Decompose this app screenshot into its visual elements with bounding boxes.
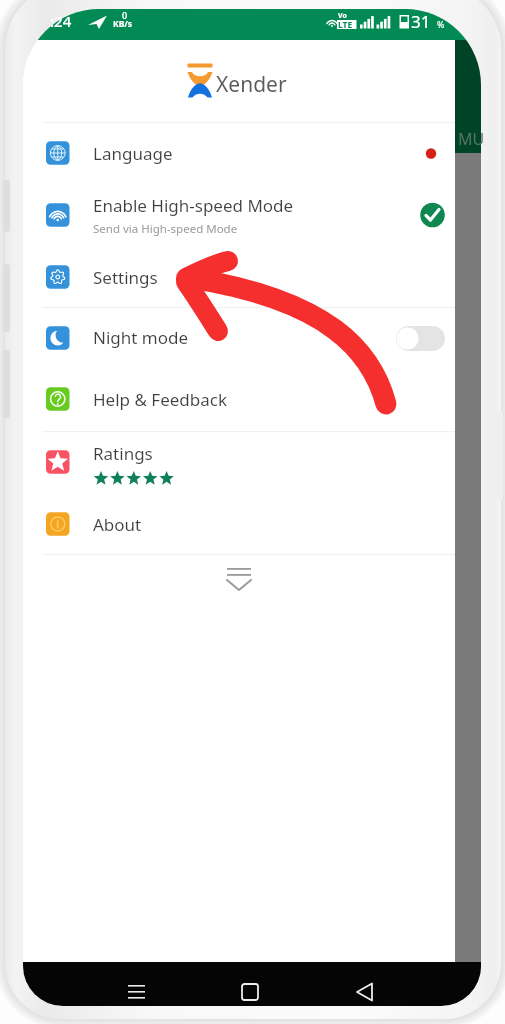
staticText: Settings xyxy=(93,266,158,289)
button[interactable] xyxy=(23,432,455,493)
button[interactable]: Expand more xyxy=(215,560,263,600)
button[interactable] xyxy=(23,122,455,184)
button[interactable] xyxy=(23,369,455,431)
button[interactable]: Recent apps xyxy=(110,966,162,1004)
button[interactable]: Back xyxy=(338,966,390,1004)
button[interactable] xyxy=(23,184,455,246)
button[interactable] xyxy=(23,308,455,369)
button[interactable] xyxy=(23,246,455,307)
staticText: Night mode xyxy=(93,326,189,349)
button[interactable]: Home xyxy=(224,966,276,1004)
staticText: :24 xyxy=(50,11,72,31)
staticText: MU xyxy=(458,128,485,150)
staticText: Send via High-speed Mode xyxy=(93,221,238,237)
staticText: Vo xyxy=(338,11,347,21)
staticText: Language xyxy=(93,142,173,165)
staticText: 31 xyxy=(411,10,431,33)
staticText: KB/s xyxy=(113,18,133,30)
staticText: Ratings xyxy=(93,442,153,465)
staticText: Help & Feedback xyxy=(93,388,227,411)
staticText: % xyxy=(437,18,445,30)
button[interactable] xyxy=(23,493,455,554)
staticText: 0 xyxy=(122,9,128,21)
staticText: LTE xyxy=(338,19,353,31)
staticText: Xender xyxy=(216,70,287,99)
staticText: Enable High-speed Mode xyxy=(93,194,294,217)
staticText: About xyxy=(93,513,142,536)
